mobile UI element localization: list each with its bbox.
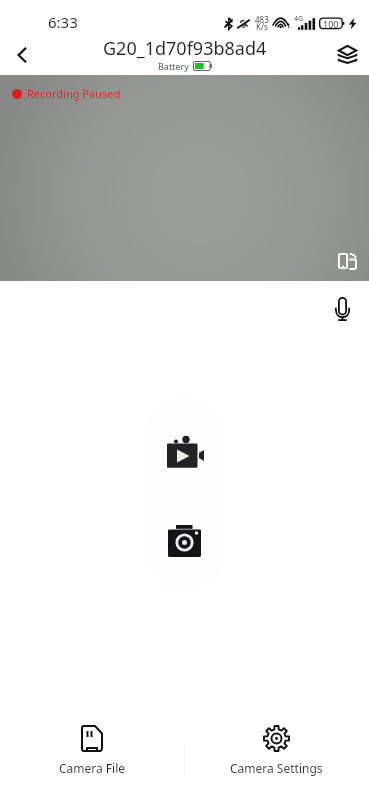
staticText: Camera File: [59, 760, 126, 776]
button[interactable]: Back: [0, 34, 44, 75]
staticText: K/s: [256, 21, 268, 32]
staticText: 483: [255, 14, 269, 25]
staticText: 6:33: [48, 12, 78, 32]
button[interactable]: Take photo: [145, 496, 225, 594]
button[interactable]: Rotate screen: [332, 246, 362, 276]
staticText: Battery: [158, 60, 189, 72]
staticText: G20_1d70f93b8ad4: [103, 36, 267, 61]
button[interactable]: Layers: [325, 34, 369, 75]
staticText: 100: [323, 18, 339, 30]
button[interactable]: Camera File: [0, 715, 184, 800]
button[interactable]: Microphone: [327, 293, 358, 324]
staticText: Camera Settings: [230, 760, 323, 776]
staticText: Recording Paused: [27, 86, 121, 101]
button[interactable]: Camera Settings: [184, 715, 369, 800]
button[interactable]: Record video: [145, 396, 225, 495]
staticText: 4G: [294, 14, 304, 24]
